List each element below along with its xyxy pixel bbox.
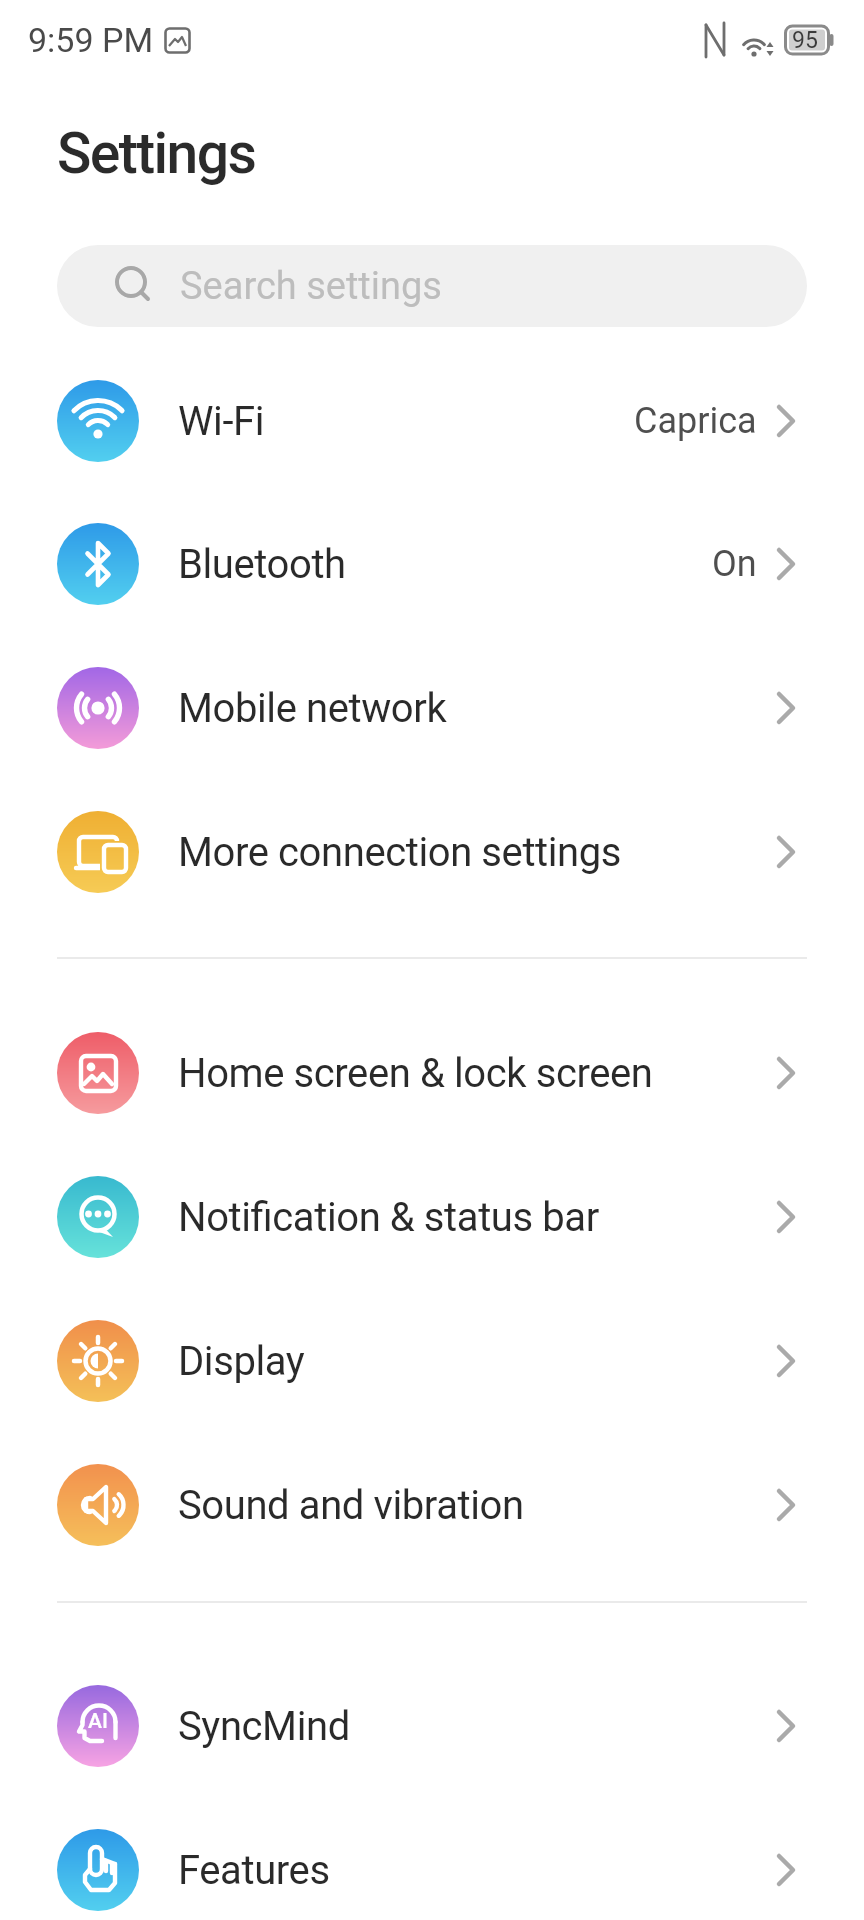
button[interactable]: Bluetooth [0,492,864,636]
staticText: More connection settings [178,829,622,876]
staticText: Features [178,1847,330,1894]
staticText: Notification & status bar [178,1194,599,1241]
button[interactable]: Notification & status bar [0,1145,864,1289]
staticText: Home screen & lock screen [178,1050,653,1097]
button[interactable]: More connection settings [0,780,864,924]
button[interactable]: AI [0,1654,864,1798]
staticText: Search settings [180,264,442,309]
staticText: On [712,543,757,585]
button[interactable]: Wi-Fi [0,349,864,493]
button[interactable]: Mobile network [0,636,864,780]
staticText: Mobile network [178,685,447,732]
staticText: Sound and vibration [178,1482,524,1529]
staticText: AI [88,1709,108,1734]
button[interactable]: Home screen & lock screen [0,1001,864,1145]
button[interactable]: Features [0,1798,864,1920]
button[interactable]: Search settings [57,245,807,327]
staticText: 9:59 PM [28,20,154,60]
staticText: Settings [57,120,256,187]
staticText: Caprica [634,400,757,442]
button[interactable]: Sound and vibration [0,1433,864,1577]
button[interactable]: Display [0,1289,864,1433]
staticText: Bluetooth [178,541,346,588]
staticText: Wi-Fi [178,398,265,445]
staticText: 95 [792,27,818,54]
staticText: Display [178,1338,305,1385]
staticText: SyncMind [178,1703,350,1750]
